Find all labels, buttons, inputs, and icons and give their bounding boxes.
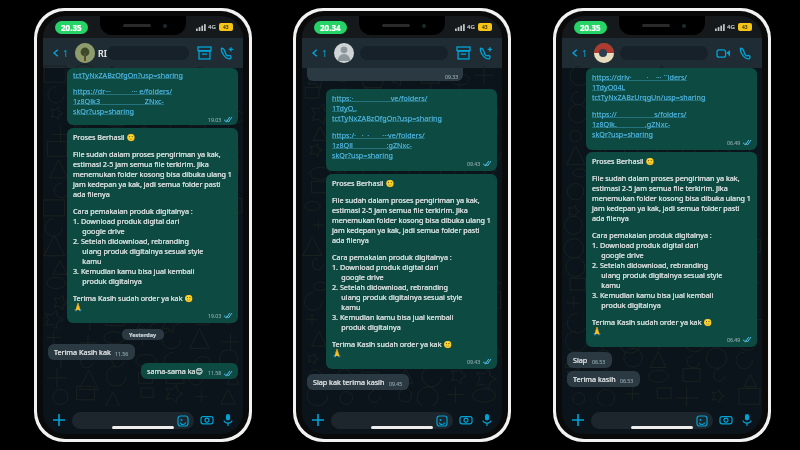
staticText: Yesterday [129,331,157,338]
staticText: 2. Setelah didownload, rebranding ulang … [73,236,204,266]
button[interactable]: Contact avatar [334,43,354,63]
staticText: tctTyNxZABzUrqgUn/usp=sharing [592,92,706,102]
button[interactable]: tctTyNxZABzOfgOn?usp=sharing [67,68,238,125]
button[interactable] [72,412,194,429]
staticText: Cara pemakaian produk digitalnya : [332,252,452,262]
staticText: 1z8Qlk3 ZNxc- [73,96,164,106]
staticText: 1. Download produk digital dari google d… [332,262,439,282]
staticText: skQr?usp=sharing [592,129,654,139]
staticText: 2. Setelah didownload, rebranding ulang … [592,260,723,290]
staticText: 19.03 [208,116,222,123]
staticText: Terima Kasih sudah order ya kak 🙂 [592,317,713,327]
button[interactable]: Voice message [478,411,496,429]
staticText: Siap [573,355,588,365]
button[interactable]: Shop [193,42,215,64]
staticText: Proses Berhasil 🙂 [592,156,655,166]
staticText: Terima kasih [573,374,616,384]
staticText: 1 [63,47,69,59]
staticText: Terima Kasih sudah order ya kak 🙂 [332,339,453,349]
button[interactable]: Proses Berhasil 🙂 [326,174,497,369]
staticText: Terima Kasih kak [54,347,111,357]
staticText: Proses Berhasil 🙂 [73,132,136,142]
button[interactable]: Siap kak terima kasih [307,374,409,390]
button[interactable]: RI [98,46,189,60]
staticText: 19.03 [208,312,222,319]
staticText: 1TdyO04L [592,82,626,92]
button[interactable]: Voice message [738,411,756,429]
button[interactable]: Video call [712,42,734,64]
button[interactable]: Siap [567,352,612,368]
button[interactable]: Voice message [219,411,237,429]
staticText: 09.43 [467,160,481,167]
staticText: 1z8Qlk. .gZNxc- [592,119,671,129]
staticText: https:· ve/folders/ [332,93,428,103]
button[interactable]: Attach [568,410,588,430]
button[interactable]: Camera [198,411,216,429]
button[interactable]: Shop [452,42,474,64]
staticText: 09.45 [389,380,403,387]
staticText: 11.58 [208,369,222,376]
staticText: 1. Download produk digital dari google d… [73,216,180,236]
staticText: 20.35 [580,22,601,33]
staticText: 09.43 [467,358,481,365]
button[interactable] [331,412,453,429]
button[interactable]: Voice call [734,42,756,64]
button[interactable]: Attach [308,410,328,430]
button[interactable] [591,412,713,429]
staticText: 11.56 [115,350,129,357]
button[interactable]: Back [49,47,71,59]
staticText: 2. Setelah didownload, rebranding ulang … [332,282,463,312]
staticText: tctTyNxZABzOfgOn?usp=sharing [73,70,183,80]
staticText: 3. Kemudian kamu bisa jual kembali produ… [73,266,195,286]
staticText: 1z8Qll :gZNxc- [332,140,412,150]
staticText: RI [98,47,107,59]
staticText: https:// s/folders/ [592,109,687,119]
button[interactable]: Camera [457,411,475,429]
button[interactable]: Terima Kasih kak [48,344,135,360]
staticText: 🙏 [332,349,342,358]
button[interactable]: Contact avatar [594,43,614,63]
staticText: 4G [467,23,475,31]
staticText: 4G [727,23,735,31]
staticText: Siap kak terima kasih [313,377,385,387]
button[interactable]: Proses Berhasil 🙂 [67,128,238,323]
staticText: https://dr··· ··· e/folders/ [73,86,173,96]
button[interactable]: Proses Berhasil 🙂 [586,152,757,347]
staticText: 1 [582,47,588,59]
staticText: 43 [223,24,229,31]
staticText: 06.49 [727,336,741,343]
staticText: 3. Kemudian kamu bisa jual kembali produ… [332,312,454,332]
staticText: tctTyNxZABzOfgOn?usp=sharing [332,113,442,123]
button[interactable]: https:· ve/folders/ [326,89,497,171]
staticText: 06.53 [592,358,606,365]
button[interactable]: Add call [474,42,496,64]
button[interactable]: Back [308,47,330,59]
staticText: 🙏 [73,303,83,312]
button[interactable]: https://driv· · ··· ``lders/ [586,68,757,150]
button[interactable]: Back [568,47,590,59]
button[interactable]: Terima kasih [567,371,640,387]
staticText: skQr?usp=sharing [73,106,135,116]
staticText: 4G [208,23,216,31]
staticText: 43 [482,24,488,31]
button[interactable]: Camera [717,411,735,429]
staticText: 06.53 [620,377,634,384]
staticText: 20.35 [61,22,82,33]
button[interactable]: Add call [215,42,237,64]
staticText: Proses Berhasil 🙂 [332,178,395,188]
staticText: 🙏 [592,327,602,336]
button[interactable]: Attach [49,410,69,430]
staticText: 06.49 [727,139,741,146]
button[interactable]: sama-sama ka😊 [141,363,238,379]
staticText: sama-sama ka😊 [147,366,204,376]
staticText: 20.34 [320,22,341,33]
staticText: Cara pemakaian produk digitalnya : [592,230,712,240]
staticText: 1TdyO,. [332,103,357,113]
staticText: 43 [742,24,748,31]
button[interactable]: Contact avatar [75,43,95,63]
staticText: https:/· · · ···ve/folders/ [332,130,425,140]
